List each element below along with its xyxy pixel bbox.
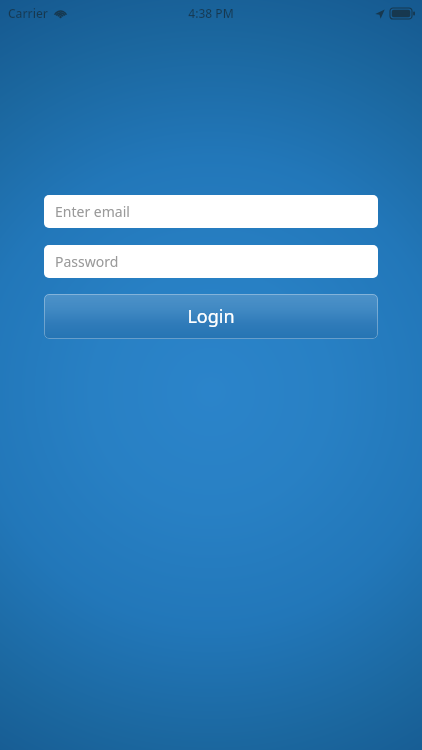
button[interactable]: Password xyxy=(44,245,378,278)
other: Location active xyxy=(375,9,385,19)
button[interactable]: Login xyxy=(44,294,378,339)
button[interactable]: Enter email xyxy=(44,195,378,228)
staticText: Carrier xyxy=(8,5,48,21)
staticText: Password xyxy=(55,252,119,271)
staticText: Enter email xyxy=(55,202,130,221)
other: Wi-Fi signal xyxy=(54,8,67,18)
staticText: Login xyxy=(187,304,235,329)
staticText: 4:38 PM xyxy=(188,5,234,21)
other: Battery full xyxy=(390,8,415,19)
